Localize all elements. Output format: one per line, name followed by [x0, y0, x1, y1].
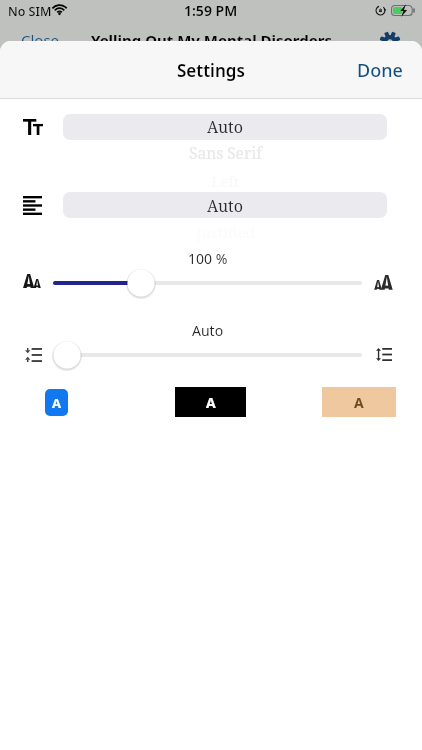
staticText: Auto — [207, 116, 243, 138]
staticText: A — [206, 393, 216, 412]
staticText: 1:59 PM — [184, 1, 238, 20]
button[interactable]: Text alignment — [63, 192, 387, 218]
staticText: Settings — [177, 59, 245, 82]
button[interactable]: A — [45, 389, 68, 416]
button[interactable]: A — [322, 387, 396, 417]
button[interactable]: Settings — [379, 31, 401, 53]
staticText: A — [354, 393, 364, 412]
button[interactable]: A — [175, 387, 246, 417]
button[interactable]: Adjust — [124, 266, 158, 300]
staticText: A — [52, 394, 61, 412]
staticText: Yelling Out My Mental Disorders — [91, 30, 332, 50]
staticText: Auto — [192, 321, 224, 340]
staticText: Auto — [207, 195, 243, 217]
staticText: No SIM — [8, 3, 52, 20]
button[interactable]: Done — [357, 58, 403, 83]
staticText: Sans Serif — [189, 142, 262, 163]
button[interactable]: Close — [21, 30, 60, 50]
button[interactable]: Font family — [63, 114, 387, 140]
button[interactable]: Adjust — [50, 338, 84, 372]
staticText: 100 % — [188, 249, 228, 268]
